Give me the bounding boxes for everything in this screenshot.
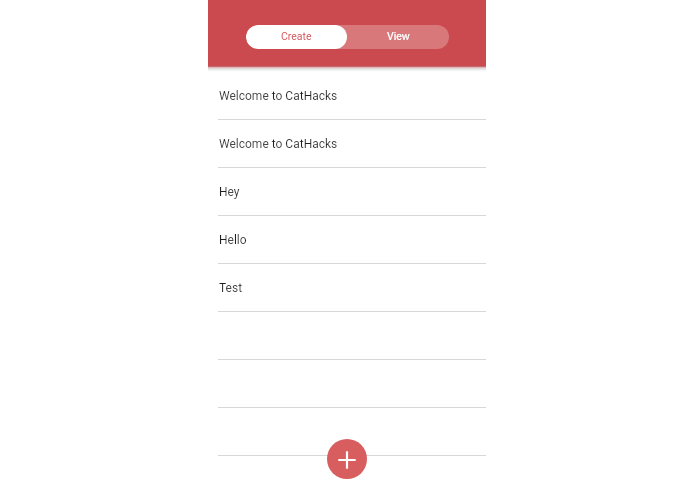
button[interactable]: Welcome to CatHacks <box>208 120 486 168</box>
button[interactable]: Add note <box>327 439 367 479</box>
staticText: Hey <box>219 185 240 199</box>
staticText: Create <box>281 30 312 42</box>
staticText: Test <box>219 281 243 295</box>
button[interactable] <box>208 456 486 494</box>
button[interactable]: Hello <box>208 216 486 264</box>
button[interactable]: Create <box>246 25 347 49</box>
button[interactable]: Welcome to CatHacks <box>208 72 486 120</box>
staticText: Welcome to CatHacks <box>219 137 338 151</box>
button[interactable] <box>208 408 486 456</box>
staticText: Hello <box>219 233 247 247</box>
button[interactable]: View <box>347 25 449 49</box>
button[interactable]: Test <box>208 264 486 312</box>
staticText: Welcome to CatHacks <box>219 89 338 103</box>
button[interactable] <box>208 312 486 360</box>
staticText: View <box>387 30 410 42</box>
button[interactable] <box>208 360 486 408</box>
button[interactable]: Hey <box>208 168 486 216</box>
